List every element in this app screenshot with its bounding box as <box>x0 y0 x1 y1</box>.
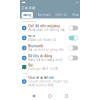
staticText: ⬤ ⬤ ⬤ <box>22 1 25 3</box>
staticText: Bật, có thiết bị ghép đôi <box>28 48 64 52</box>
staticText: Hiển thị <box>55 13 67 17</box>
staticText: Chia sẻ và kết nối <box>28 76 54 79</box>
button[interactable]: Chia sẻ và kết nối <box>20 76 80 87</box>
button[interactable]: Chế độ trên máy bay <box>20 23 80 33</box>
button[interactable]: Back <box>30 93 36 99</box>
staticText: Khác <box>72 13 78 17</box>
button[interactable]: Gọi <box>20 63 80 71</box>
staticText: CÀI ĐẶT KẾT NỐI MẠNG <box>22 21 36 22</box>
button[interactable]: Wi-Fi <box>20 33 80 43</box>
staticText: Đã kết nối Home_5G <box>28 38 56 42</box>
staticText: Dữ liệu di động <box>28 54 52 58</box>
staticText: Cài đặt <box>22 5 36 10</box>
button[interactable]: Hiển thị <box>55 12 67 18</box>
button[interactable]: Âm thanh <box>38 12 51 18</box>
button[interactable]: Bluetooth <box>20 43 80 53</box>
staticText: và các tuỳ chọn khác <box>28 83 53 87</box>
staticText: Âm thanh <box>38 13 51 17</box>
staticText: Wi-Fi <box>28 34 35 38</box>
button[interactable]: Recents <box>63 93 69 99</box>
staticText: Chia sẻ Internet, truyền tệp <box>28 80 68 83</box>
staticText: Chế độ trên máy bay <box>28 24 59 28</box>
button[interactable]: Home <box>47 93 53 99</box>
staticText: Cuộc gọi Wi-Fi, VoLTE <box>28 67 57 71</box>
staticText: Đang bật cho mạng chính <box>28 58 63 62</box>
staticText: Bluetooth <box>28 44 43 48</box>
staticText: Tắt tất cả kết nối không dây <box>28 28 64 32</box>
staticText: KẾT NỐI <box>22 73 27 74</box>
button[interactable]: Mạng <box>22 12 33 18</box>
button[interactable]: Dữ liệu di động <box>20 53 80 63</box>
button[interactable]: Khác <box>72 12 78 18</box>
staticText: Gọi <box>28 63 33 67</box>
staticText: ▮ ▮ <box>76 1 78 3</box>
staticText: Mạng <box>23 13 31 17</box>
